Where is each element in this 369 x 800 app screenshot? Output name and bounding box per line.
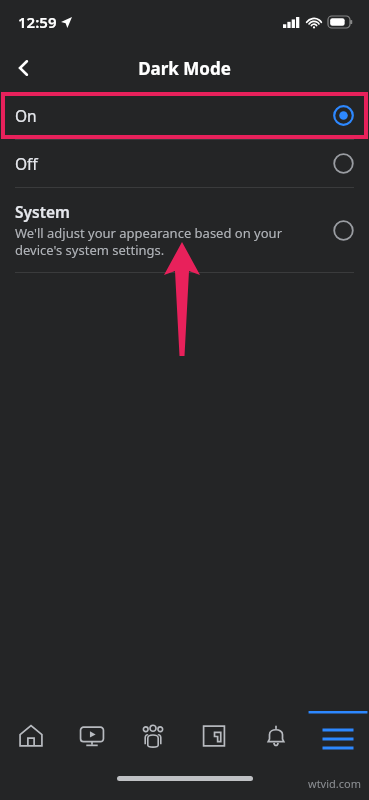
button[interactable]: Watch: [61, 706, 122, 766]
button[interactable]: Marketplace: [183, 706, 245, 766]
staticText: On: [15, 105, 37, 126]
staticText: Dark Mode: [138, 57, 231, 80]
button[interactable]: Groups: [122, 706, 183, 766]
button[interactable]: Menu: [307, 706, 369, 766]
button[interactable]: Home: [0, 706, 61, 766]
staticText: Off: [15, 153, 38, 174]
button[interactable]: Notifications: [245, 706, 307, 766]
button[interactable]: Off: [0, 140, 369, 187]
button[interactable]: Back: [0, 44, 48, 92]
button[interactable]: On: [0, 92, 369, 139]
staticText: System: [15, 201, 70, 222]
staticText: 12:59: [18, 12, 57, 32]
staticText: wtvid.com: [308, 776, 361, 791]
staticText: We'll adjust your appearance based on yo…: [15, 224, 282, 259]
button[interactable]: System: [0, 188, 369, 272]
